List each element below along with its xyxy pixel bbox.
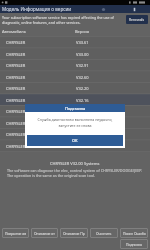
staticText: V32.91 xyxy=(76,63,89,68)
staticText: V32.16 xyxy=(76,98,89,103)
button[interactable]: CHRYSLER xyxy=(0,59,150,71)
button[interactable]: Описание Пр xyxy=(60,228,88,238)
staticText: Описание от xyxy=(34,231,55,236)
button[interactable]: CHRYSLER xyxy=(0,36,150,48)
staticText: V33.61 xyxy=(76,40,89,45)
button[interactable]: VCI status xyxy=(132,7,137,12)
staticText: CHRYSLER xyxy=(6,75,76,80)
staticText: Версия xyxy=(75,29,89,34)
staticText: The software can diagnose the elec, cont… xyxy=(7,168,147,178)
staticText: Your subscription software service has e… xyxy=(2,15,123,25)
button[interactable]: CHRYSLER xyxy=(0,94,150,106)
staticText: CHRYSLER xyxy=(6,86,76,91)
staticText: Подписка xyxy=(126,242,142,247)
staticText: Автомобиль xyxy=(2,29,75,34)
staticText: CHRYSLER V32.00 Systems xyxy=(50,161,100,166)
button[interactable]: CHRYSLER xyxy=(0,140,150,152)
button[interactable]: Покрытие ав xyxy=(2,228,29,238)
staticText: Описание Пр xyxy=(63,231,85,236)
staticText: CHRYSLER xyxy=(6,52,76,57)
staticText: V32.60 xyxy=(76,75,89,80)
button[interactable]: OK xyxy=(27,135,123,146)
button[interactable]: Очистить xyxy=(90,228,118,238)
button[interactable]: CHRYSLER xyxy=(0,128,150,140)
staticText: CHRYSLER xyxy=(6,121,76,126)
staticText: Модель Информация о версии xyxy=(2,6,72,12)
button[interactable]: Renewals xyxy=(126,15,148,24)
button[interactable]: CHRYSLER xyxy=(0,48,150,60)
staticText: CHRYSLER xyxy=(6,132,76,137)
button[interactable]: Поиск Ошибо xyxy=(120,228,148,238)
button[interactable]: CHRYSLER xyxy=(0,82,150,94)
button[interactable]: CHRYSLER xyxy=(0,105,150,117)
staticText: Поиск Ошибо xyxy=(123,231,146,236)
staticText: CHRYSLER xyxy=(6,63,76,68)
staticText: Renewals xyxy=(129,17,145,22)
staticText: OK xyxy=(72,138,78,143)
staticText: V33.00 xyxy=(76,52,89,57)
staticText: Очистить xyxy=(96,231,112,236)
button[interactable]: CHRYSLER xyxy=(0,71,150,83)
staticText: V32.20 xyxy=(76,86,89,91)
staticText: Покрытие ав xyxy=(5,231,27,236)
button[interactable]: Menu xyxy=(101,7,106,12)
button[interactable]: Описание от xyxy=(31,228,58,238)
button[interactable]: CHRYSLER xyxy=(0,117,150,129)
staticText: CHRYSLER xyxy=(6,144,76,149)
staticText: CHRYSLER xyxy=(6,109,76,114)
staticText: CHRYSLER xyxy=(6,98,76,103)
staticText: CHRYSLER xyxy=(6,40,76,45)
staticText: Служба диагностики выполнена неудачно, з… xyxy=(33,117,117,128)
staticText: Подсказка xyxy=(65,106,86,111)
button[interactable]: Подписка xyxy=(120,239,148,249)
